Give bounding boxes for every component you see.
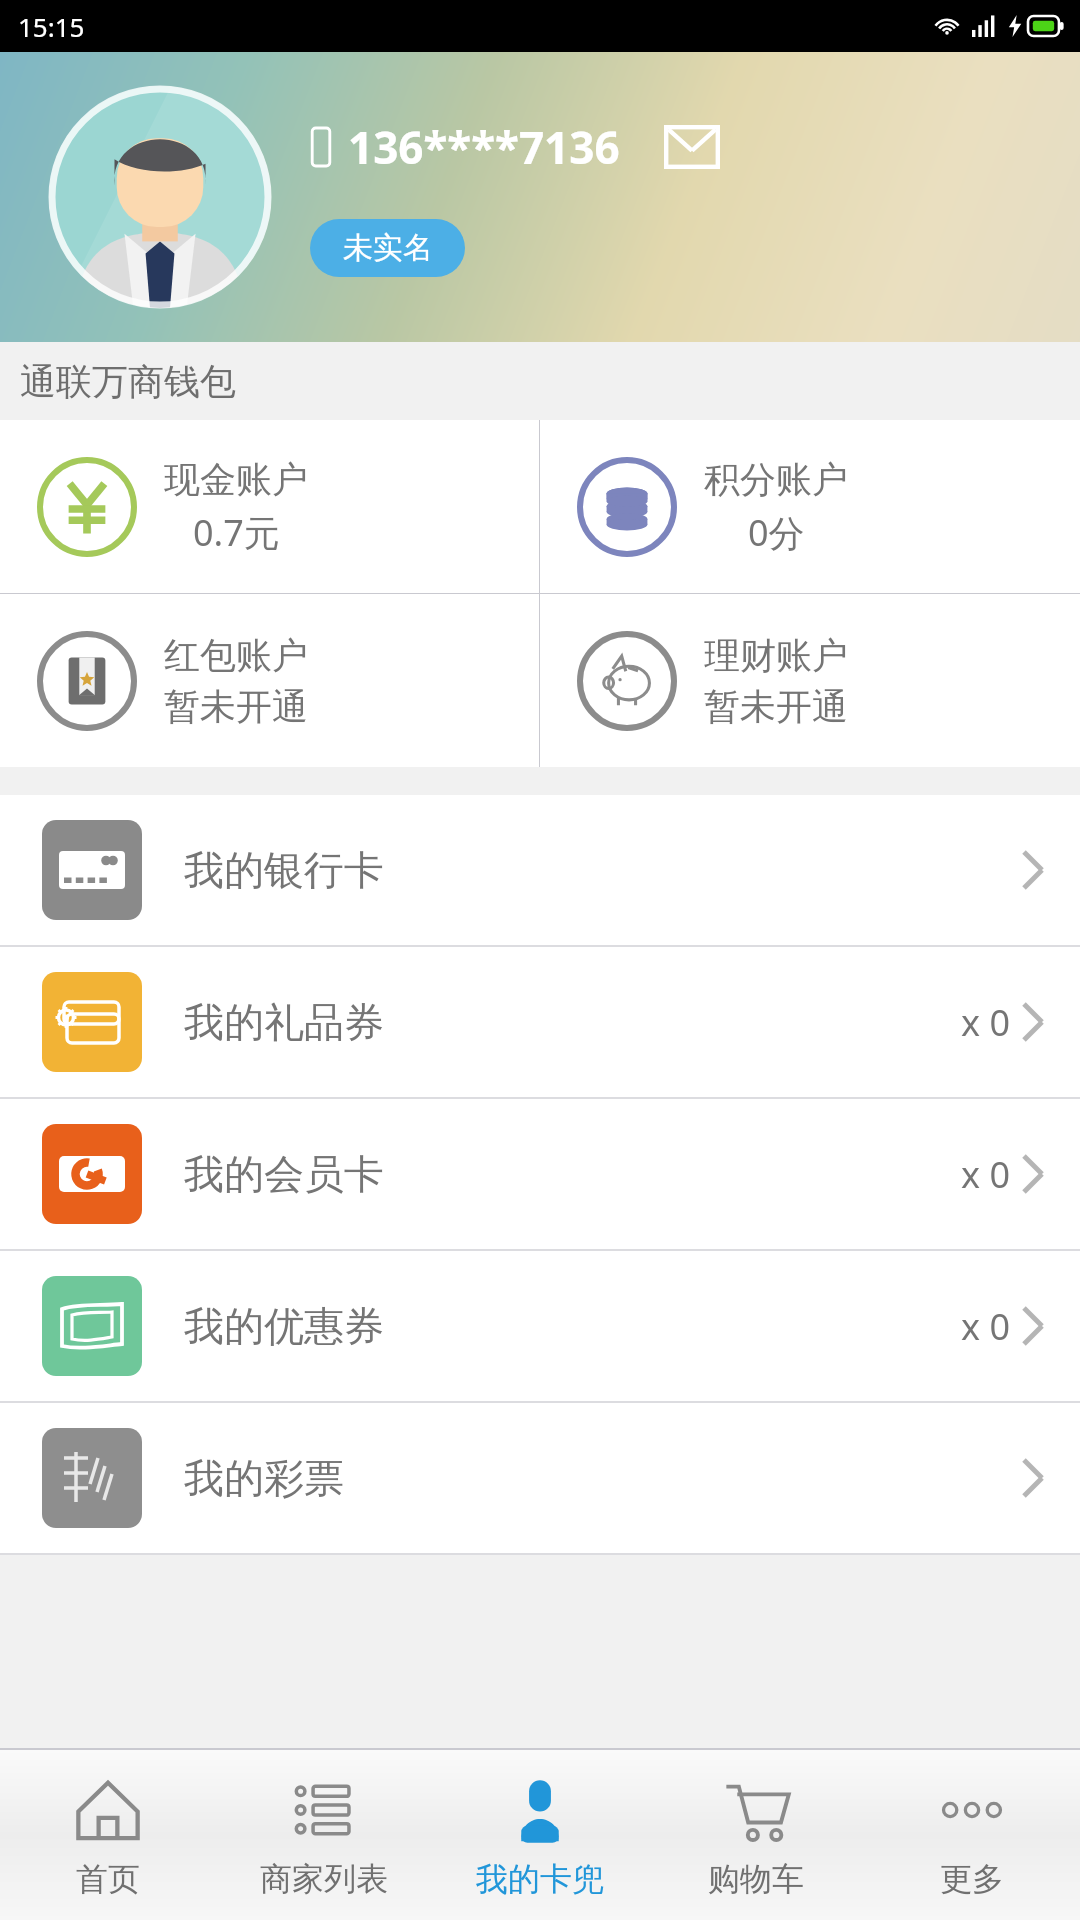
- staticText: 积分账户: [704, 457, 848, 502]
- button[interactable]: 商家列表: [216, 1750, 432, 1920]
- button[interactable]: 购物车: [648, 1750, 864, 1920]
- staticText: x 0: [961, 998, 1010, 1047]
- button[interactable]: 现金账户: [0, 420, 539, 593]
- button[interactable]: 未实名: [310, 219, 465, 277]
- button[interactable]: 积分账户: [540, 420, 1080, 593]
- button[interactable]: 红包账户: [0, 594, 539, 767]
- staticText: 15:15: [18, 9, 85, 44]
- button[interactable]: 理财账户: [540, 594, 1080, 767]
- button[interactable]: 我的彩票: [0, 1403, 1080, 1553]
- staticText: 未实名: [343, 229, 433, 267]
- staticText: 暂未开通: [704, 684, 848, 729]
- staticText: 我的银行卡: [184, 845, 384, 895]
- staticText: 我的会员卡: [184, 1149, 384, 1199]
- staticText: 首页: [76, 1859, 140, 1899]
- staticText: 更多: [940, 1859, 1004, 1899]
- staticText: x 0: [961, 1150, 1010, 1199]
- staticText: 我的彩票: [184, 1453, 344, 1503]
- staticText: 我的卡兜: [476, 1859, 604, 1899]
- staticText: 0.7元: [193, 508, 280, 557]
- staticText: 现金账户: [164, 457, 308, 502]
- staticText: 我的优惠券: [184, 1301, 384, 1351]
- button[interactable]: 我的优惠券: [0, 1251, 1080, 1401]
- button[interactable]: 我的会员卡: [0, 1099, 1080, 1249]
- button[interactable]: 更多: [864, 1750, 1080, 1920]
- staticText: 我的礼品券: [184, 997, 384, 1047]
- staticText: 136****7136: [348, 117, 620, 177]
- button[interactable]: 我的银行卡: [0, 795, 1080, 945]
- staticText: 商家列表: [260, 1859, 388, 1899]
- staticText: x 0: [961, 1302, 1010, 1351]
- staticText: 理财账户: [704, 633, 848, 678]
- staticText: 0分: [748, 508, 805, 557]
- button[interactable]: Messages: [664, 125, 720, 169]
- staticText: 购物车: [708, 1859, 804, 1899]
- button[interactable]: 我的礼品券: [0, 947, 1080, 1097]
- staticText: 暂未开通: [164, 684, 308, 729]
- button[interactable]: 首页: [0, 1750, 216, 1920]
- button[interactable]: 我的卡兜: [432, 1750, 648, 1920]
- button[interactable]: Avatar: [49, 86, 271, 308]
- staticText: 通联万商钱包: [20, 359, 236, 404]
- staticText: 红包账户: [164, 633, 308, 678]
